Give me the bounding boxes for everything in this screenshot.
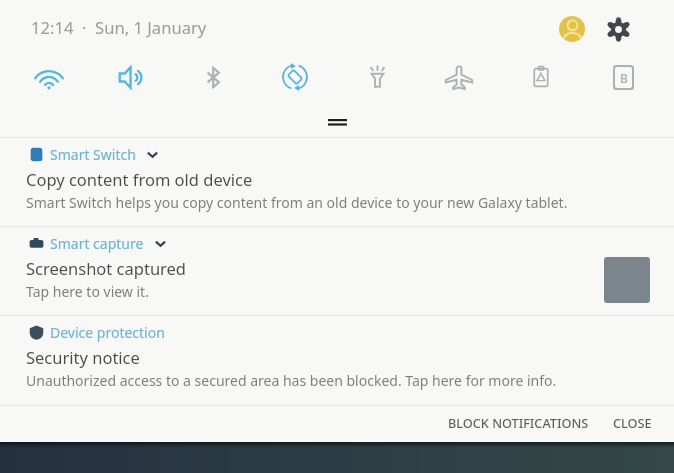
staticText: Security notice [26,346,140,368]
button[interactable]: Smart capture [0,227,674,315]
button[interactable]: Profile [559,16,585,42]
button[interactable]: Settings [608,19,629,40]
button[interactable]: Smart Switch [0,138,674,226]
staticText: Tap here to view it. [26,282,149,301]
staticText: CLOSE [613,414,652,429]
button[interactable]: Wi-Fi [8,58,90,96]
staticText: Smart Switch helps you copy content from… [26,193,568,212]
button[interactable]: Airplane mode [418,58,500,96]
button[interactable]: BLOCK NOTIFICATIONS [438,406,599,437]
button[interactable]: Auto rotate [254,58,336,96]
staticText: Device protection [50,323,165,342]
staticText: BLOCK NOTIFICATIONS [448,414,589,429]
staticText: Smart capture [50,234,144,253]
button[interactable]: Device protection [0,316,674,405]
button[interactable]: CLOSE [603,406,662,437]
staticText: Smart Switch [50,145,136,164]
staticText: B [620,70,628,86]
button[interactable]: Bluetooth [172,58,254,96]
button[interactable]: Clipboard [500,58,582,96]
button[interactable]: Flashlight [336,58,418,96]
staticText: 12:14 · Sun, 1 January [31,16,207,39]
button[interactable]: Sound [90,58,172,96]
button[interactable]: Bixby [582,58,664,96]
staticText: Unauthorized access to a secured area ha… [26,371,557,390]
staticText: Copy content from old device [26,168,253,190]
staticText: Screenshot captured [26,257,187,279]
